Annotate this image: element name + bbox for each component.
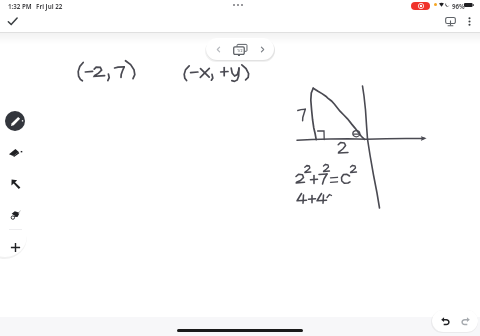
button[interactable]: Pen <box>5 111 25 131</box>
button[interactable]: Redo <box>455 310 475 332</box>
staticText: 96% <box>452 2 465 10</box>
button[interactable]: Done <box>3 12 22 31</box>
staticText: Fri Jul 22 <box>36 2 63 10</box>
button[interactable]: Present to <box>441 12 460 31</box>
button[interactable]: Highlighter <box>6 204 26 224</box>
button[interactable]: Screen recording <box>411 2 430 10</box>
button[interactable]: Previous page <box>208 38 228 60</box>
button[interactable]: Add tool <box>5 237 25 257</box>
staticText: 1:32 PM <box>8 2 32 10</box>
button[interactable]: Pages <box>227 38 253 60</box>
button[interactable]: Select <box>6 174 26 194</box>
button[interactable]: Next page <box>252 38 272 60</box>
button[interactable]: Undo <box>435 310 455 332</box>
button[interactable]: More options <box>460 12 479 31</box>
staticText: 1/2 <box>237 48 243 53</box>
button[interactable]: Eraser <box>4 142 24 162</box>
